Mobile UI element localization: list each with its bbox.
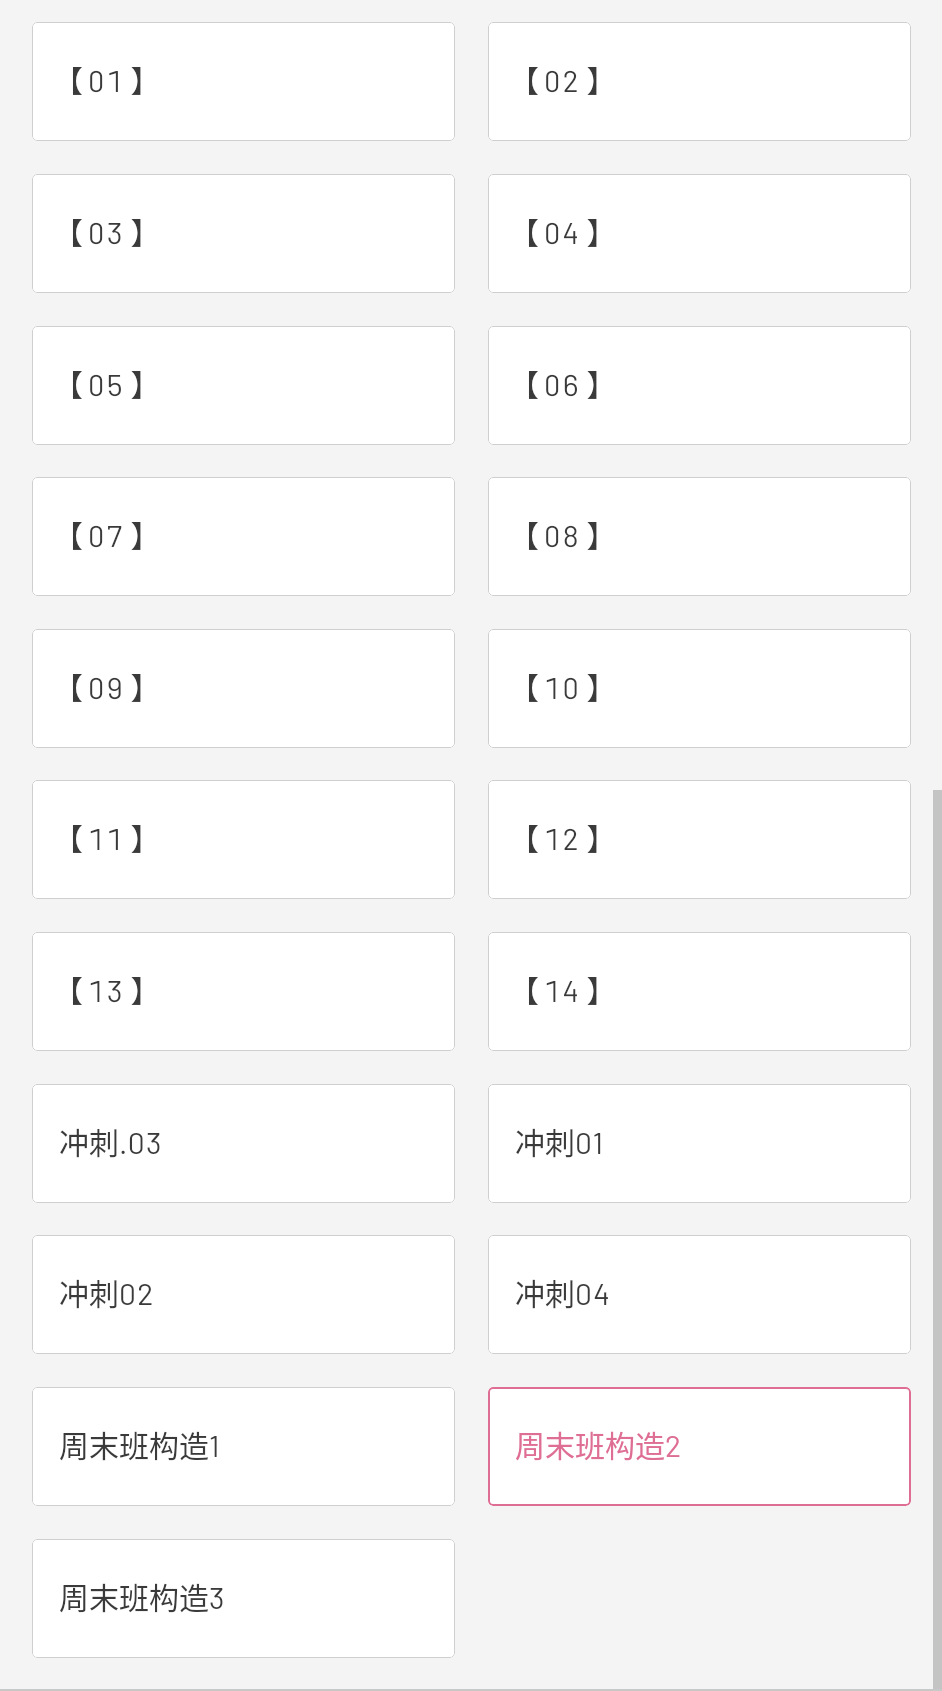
staticText: 冲刺04 (515, 1270, 612, 1313)
button[interactable]: 【08】 (488, 477, 911, 596)
button[interactable]: 【13】 (32, 932, 455, 1051)
button[interactable]: 【05】 (32, 326, 455, 445)
button[interactable]: 【01】 (32, 22, 455, 141)
button[interactable]: 冲刺02 (32, 1235, 455, 1354)
button[interactable]: 【10】 (488, 629, 911, 748)
staticText: 【10】 (509, 664, 617, 707)
staticText: 【09】 (53, 664, 161, 707)
staticText: 【03】 (53, 209, 161, 252)
staticText: 冲刺01 (515, 1119, 605, 1162)
button[interactable]: 【07】 (32, 477, 455, 596)
staticText: 周末班构造2 (515, 1422, 683, 1465)
button[interactable]: 【02】 (488, 22, 911, 141)
button[interactable]: 冲刺04 (488, 1235, 911, 1354)
button[interactable]: 【03】 (32, 174, 455, 293)
staticText: 【06】 (509, 361, 617, 404)
staticText: 【08】 (509, 512, 617, 555)
staticText: 【12】 (509, 815, 617, 858)
button[interactable]: 周末班构造3 (32, 1539, 455, 1658)
staticText: 冲刺02 (59, 1270, 155, 1313)
staticText: 冲刺.03 (59, 1119, 163, 1162)
button[interactable]: 【12】 (488, 780, 911, 899)
staticText: 【14】 (509, 967, 617, 1010)
staticText: 周末班构造3 (59, 1574, 226, 1617)
staticText: 【13】 (53, 967, 161, 1010)
button[interactable]: 【06】 (488, 326, 911, 445)
button[interactable]: 冲刺01 (488, 1084, 911, 1203)
button[interactable]: 冲刺.03 (32, 1084, 455, 1203)
staticText: 【05】 (53, 361, 161, 404)
staticText: 【11】 (53, 815, 161, 858)
button[interactable]: 【04】 (488, 174, 911, 293)
staticText: 周末班构造1 (59, 1422, 221, 1465)
button[interactable]: 周末班构造1 (32, 1387, 455, 1506)
staticText: 【01】 (53, 57, 161, 100)
button[interactable]: 【09】 (32, 629, 455, 748)
button[interactable]: 周末班构造2 (488, 1387, 911, 1506)
staticText: 【02】 (509, 57, 617, 100)
staticText: 【07】 (53, 512, 161, 555)
staticText: 【04】 (509, 209, 617, 252)
button[interactable]: 【11】 (32, 780, 455, 899)
button[interactable]: 【14】 (488, 932, 911, 1051)
